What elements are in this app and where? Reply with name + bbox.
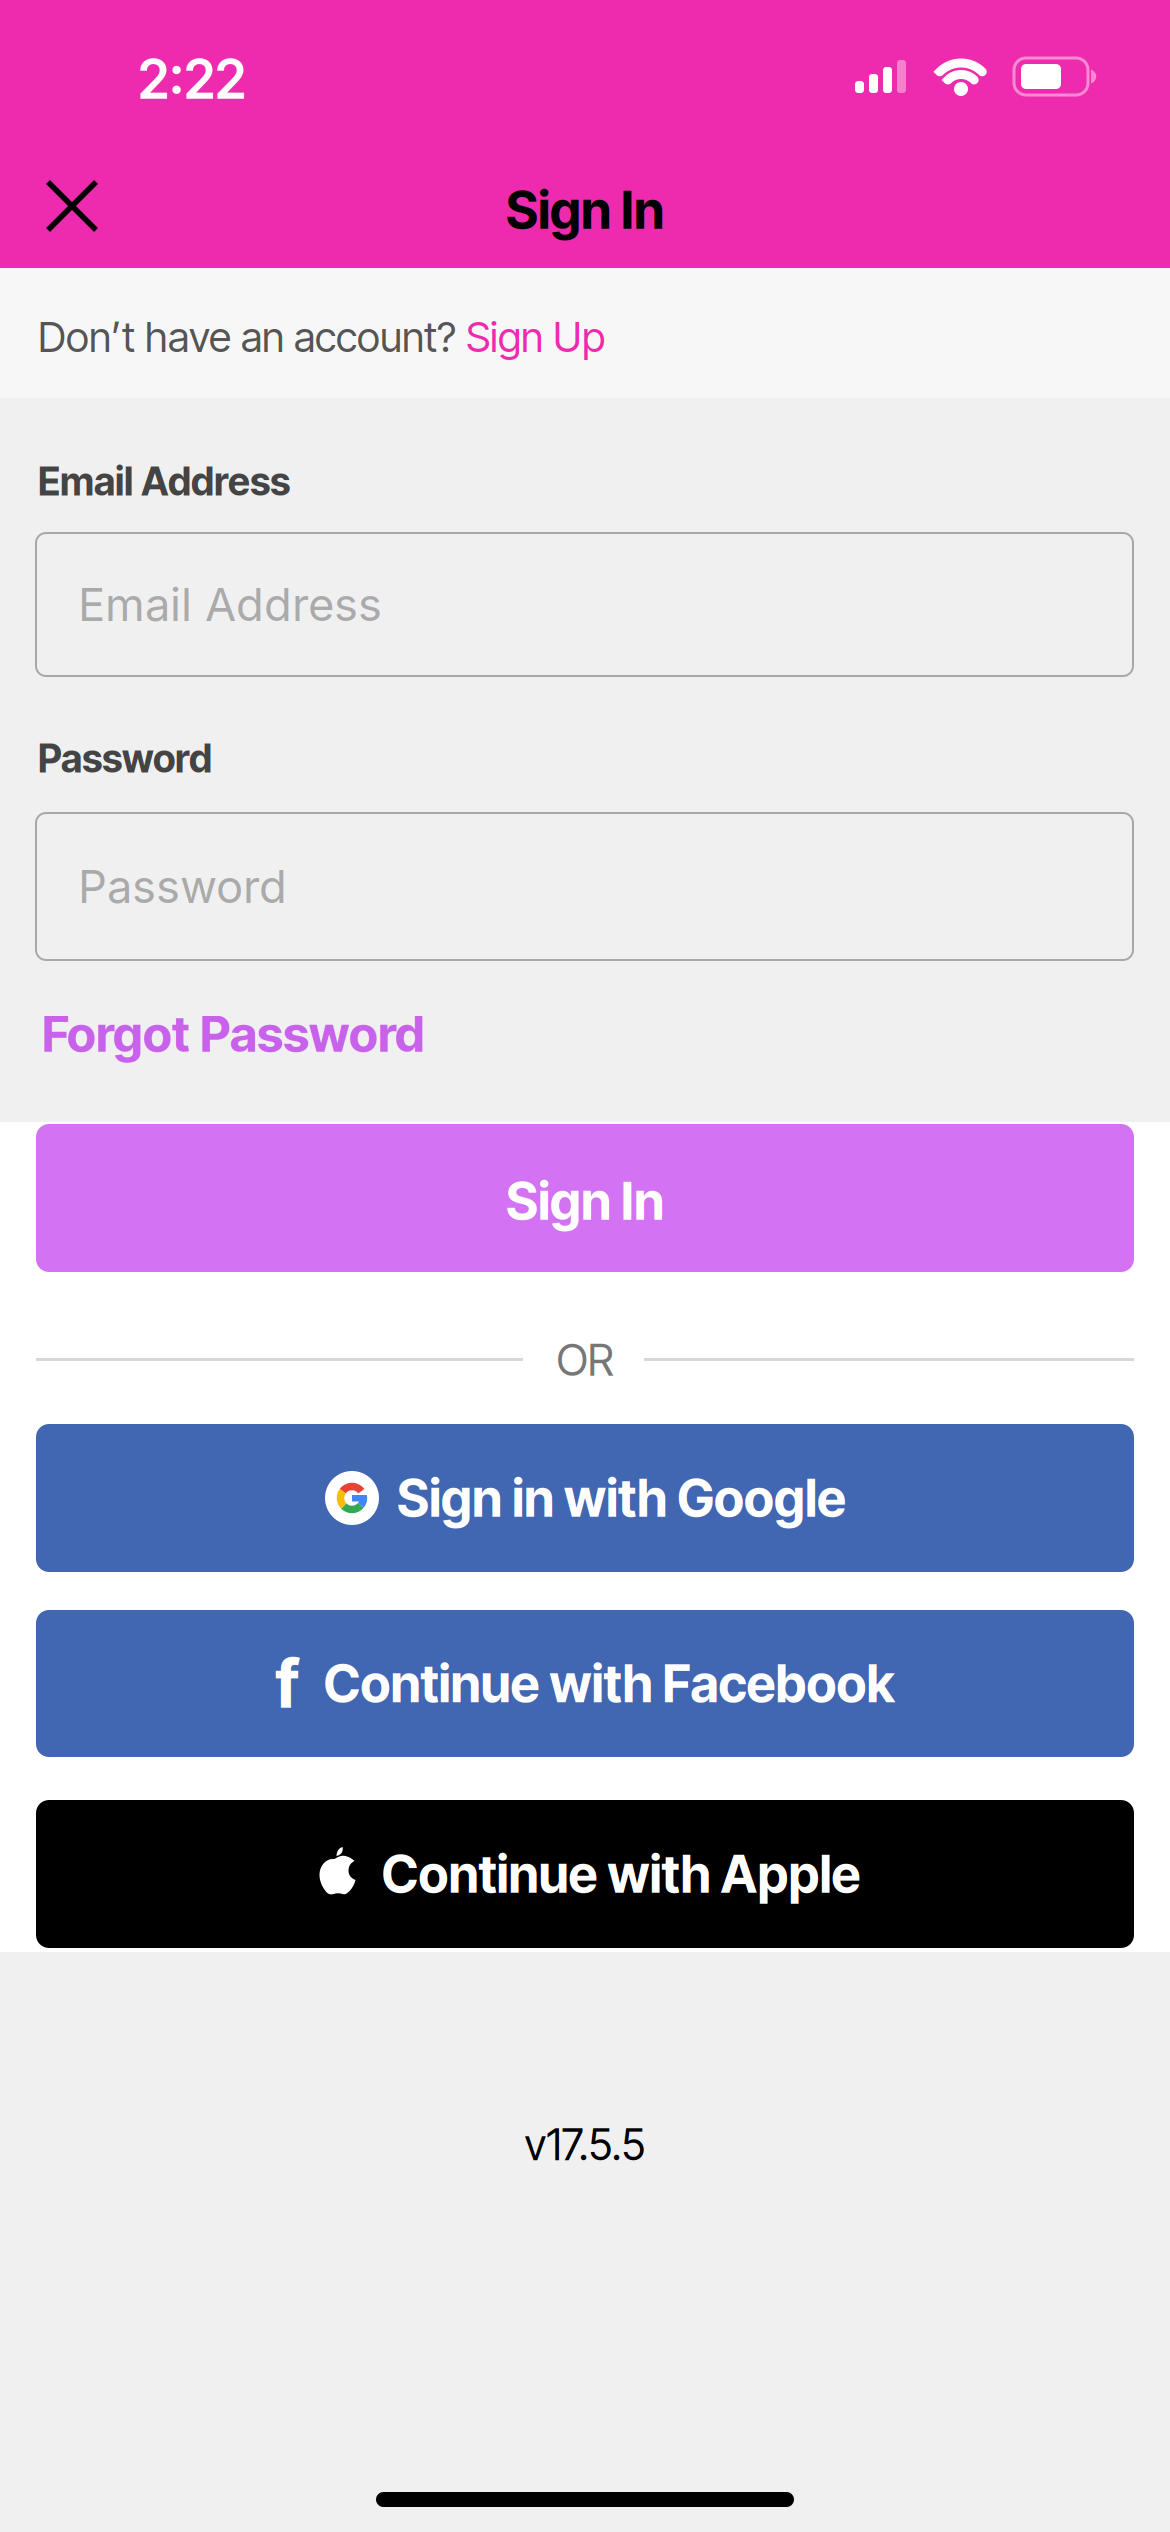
staticText: Email Address — [38, 458, 290, 505]
staticText: 2:22 — [138, 47, 246, 111]
staticText: Don’t have an account? — [38, 312, 466, 362]
staticText: Password — [38, 735, 212, 782]
button[interactable]: Email Address — [36, 533, 1133, 676]
button[interactable]: Sign Up — [466, 312, 605, 362]
staticText: v17.5.5 — [524, 2119, 645, 2171]
staticText: Sign Up — [466, 312, 605, 362]
button[interactable]: Continue with Apple — [36, 1800, 1134, 1948]
staticText: f — [275, 1643, 299, 1724]
staticText: Email Address — [78, 577, 382, 632]
staticText: Forgot Password — [42, 1004, 424, 1064]
button[interactable]: Forgot Password — [42, 1004, 424, 1064]
button[interactable]: Sign in with Google — [36, 1424, 1134, 1572]
button[interactable]: Sign In — [36, 1124, 1134, 1272]
button[interactable]: Password — [36, 813, 1133, 960]
staticText: Password — [78, 859, 287, 914]
staticText: Sign In — [506, 179, 664, 241]
staticText: Continue with Apple — [381, 1843, 860, 1905]
staticText: Sign in with Google — [397, 1467, 846, 1529]
button[interactable]: f — [36, 1610, 1134, 1757]
staticText: Sign In — [506, 1170, 664, 1232]
staticText: Continue with Facebook — [323, 1652, 894, 1714]
button[interactable] — [48, 182, 96, 230]
staticText: OR — [556, 1333, 613, 1386]
